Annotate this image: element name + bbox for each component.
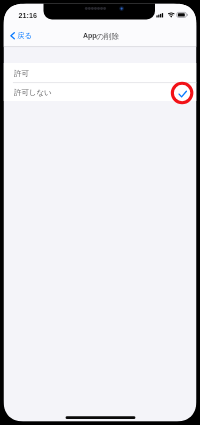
button[interactable]: [4, 82, 197, 101]
button[interactable]: [4, 63, 197, 82]
button[interactable]: 戻る: [5, 29, 37, 43]
